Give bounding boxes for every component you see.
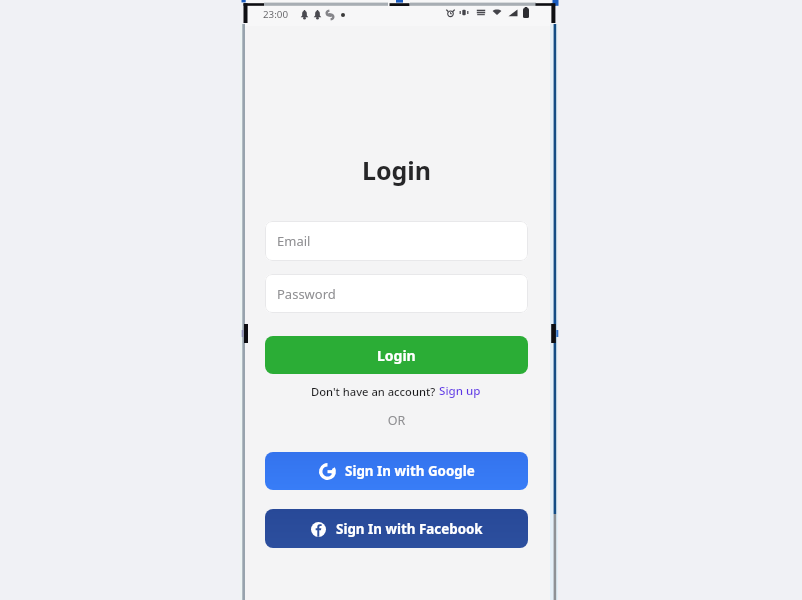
staticText: 23:00 (263, 8, 289, 21)
button[interactable]: Sign In with Google (265, 452, 528, 490)
staticText: Sign In with Google (345, 462, 475, 480)
staticText: Sign In with Facebook (336, 520, 483, 538)
staticText: OR (265, 412, 528, 429)
button[interactable]: Login (265, 336, 528, 374)
staticText: Don't have an account? (311, 384, 436, 399)
button[interactable]: Email (265, 221, 528, 261)
staticText: Sign up (439, 383, 481, 399)
button[interactable]: Sign up (439, 383, 481, 399)
button[interactable]: Sign In with Facebook (265, 509, 528, 548)
staticText: Password (277, 285, 336, 303)
staticText: Login (265, 153, 528, 187)
staticText: Email (277, 232, 311, 250)
button[interactable]: Password (265, 274, 528, 313)
staticText: Login (377, 346, 416, 365)
